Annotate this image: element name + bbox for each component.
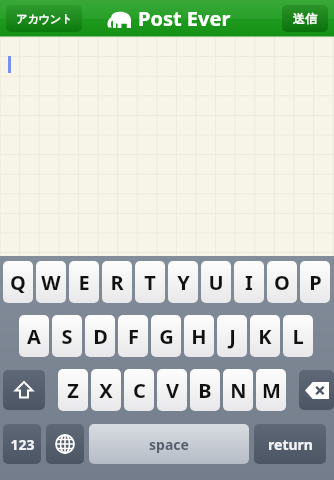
button[interactable]: P [300, 261, 330, 303]
button[interactable]: M [256, 369, 286, 411]
staticText: R [110, 269, 124, 296]
button[interactable]: N [223, 369, 253, 411]
button[interactable]: 送信 [282, 5, 328, 32]
staticText: X [99, 377, 113, 404]
button[interactable]: J [217, 315, 247, 357]
staticText: M [262, 377, 281, 404]
button[interactable]: D [85, 315, 115, 357]
button[interactable]: S [52, 315, 82, 357]
staticText: A [27, 323, 41, 350]
button[interactable]: Z [58, 369, 88, 411]
button[interactable]: B [190, 369, 220, 411]
button[interactable]: H [184, 315, 214, 357]
staticText: T [144, 269, 156, 296]
staticText: G [159, 323, 174, 350]
staticText: J [229, 323, 236, 350]
staticText: N [230, 377, 247, 404]
button[interactable]: A [19, 315, 49, 357]
button[interactable]: V [157, 369, 187, 411]
button[interactable]: U [201, 261, 231, 303]
staticText: Z [67, 377, 79, 404]
staticText: D [93, 323, 108, 350]
button[interactable]: アカウント [6, 5, 82, 32]
button[interactable]: T [135, 261, 165, 303]
staticText: E [78, 269, 90, 296]
staticText: U [208, 269, 224, 296]
staticText: Q [10, 269, 26, 296]
button[interactable]: Shift [3, 370, 45, 410]
staticText: S [61, 323, 73, 350]
staticText: W [41, 269, 61, 296]
button[interactable]: X [91, 369, 121, 411]
staticText: Post Ever [138, 5, 231, 32]
button[interactable]: O [267, 261, 297, 303]
button[interactable]: R [102, 261, 132, 303]
staticText: 123 [10, 435, 35, 454]
staticText: P [309, 269, 322, 296]
staticText: V [166, 377, 179, 404]
button[interactable]: Change keyboard [46, 424, 84, 464]
staticText: K [258, 323, 272, 350]
staticText: F [128, 323, 139, 350]
button[interactable]: Q [3, 261, 33, 303]
staticText: L [292, 323, 304, 350]
staticText: B [198, 377, 212, 404]
button[interactable]: E [69, 261, 99, 303]
staticText: 送信 [293, 11, 317, 26]
button[interactable]: space [89, 424, 249, 464]
staticText: C [133, 377, 146, 404]
button[interactable]: Delete [299, 370, 334, 410]
button[interactable]: I [234, 261, 264, 303]
staticText: I [245, 269, 253, 296]
staticText: O [274, 269, 290, 296]
button[interactable]: G [151, 315, 181, 357]
staticText: space [149, 435, 189, 454]
button[interactable]: return [254, 424, 326, 464]
button[interactable]: K [250, 315, 280, 357]
button[interactable]: 123 [3, 424, 41, 464]
staticText: Y [177, 269, 190, 296]
button[interactable]: L [283, 315, 313, 357]
staticText: return [268, 435, 313, 454]
button[interactable]: W [36, 261, 66, 303]
button[interactable]: C [124, 369, 154, 411]
staticText: アカウント [16, 12, 73, 26]
button[interactable]: Y [168, 261, 198, 303]
button[interactable]: F [118, 315, 148, 357]
staticText: H [191, 323, 207, 350]
